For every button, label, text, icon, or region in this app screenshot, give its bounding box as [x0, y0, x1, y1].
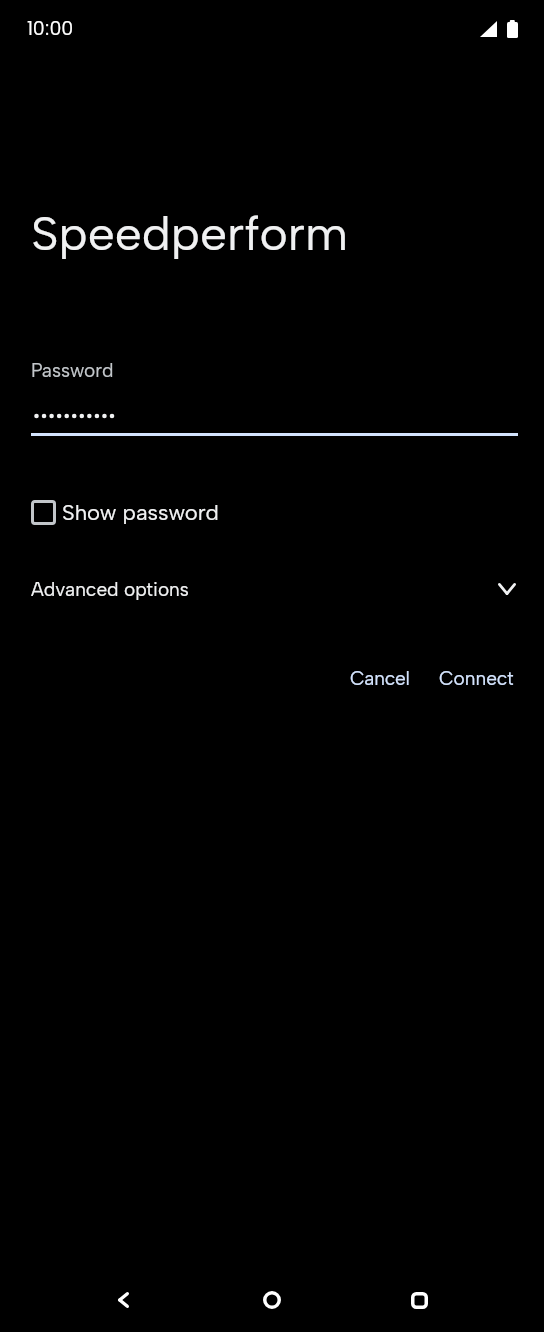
- button[interactable]: Back: [99, 1276, 147, 1324]
- button[interactable]: Recent apps: [395, 1276, 443, 1324]
- button[interactable]: Show password: [21, 490, 222, 534]
- staticText: Connect: [439, 667, 514, 690]
- staticText: Cancel: [350, 667, 410, 690]
- button[interactable]: Connect: [427, 659, 526, 698]
- staticText: Advanced options: [31, 578, 189, 601]
- staticText: Show password: [62, 499, 219, 525]
- staticText: Password: [31, 359, 114, 382]
- button[interactable]: Cancel: [338, 659, 422, 698]
- staticText: Speedperform: [31, 204, 348, 262]
- button[interactable]: Home: [248, 1276, 296, 1324]
- staticText: 10:00: [27, 17, 74, 40]
- button[interactable]: Advanced options: [31, 563, 544, 615]
